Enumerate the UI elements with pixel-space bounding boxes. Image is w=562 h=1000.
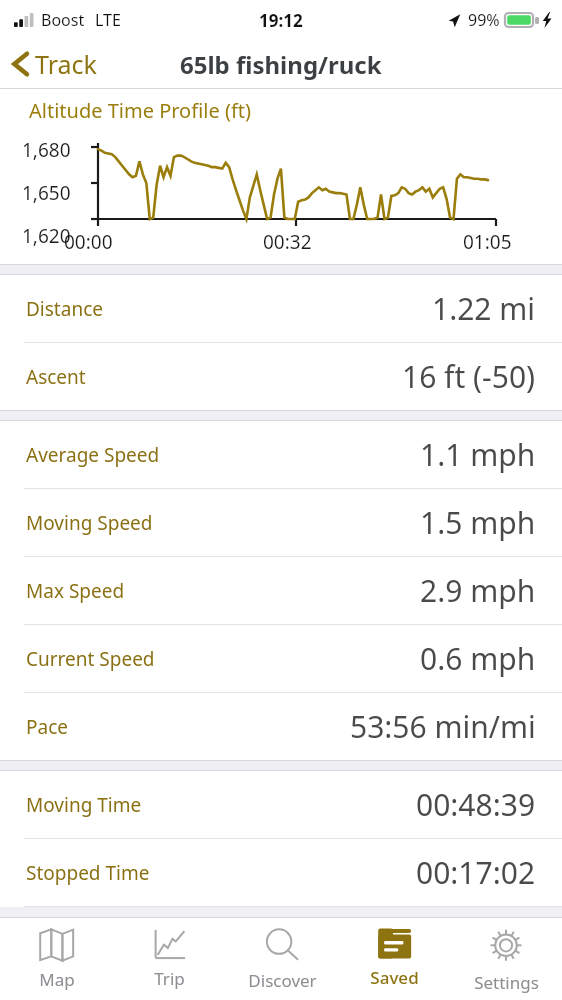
button[interactable]: Map [0, 918, 113, 1000]
staticText: Saved [370, 966, 419, 989]
staticText: Distance [26, 296, 103, 322]
button[interactable]: Stopped Time [0, 839, 562, 906]
staticText: Current Speed [26, 646, 155, 672]
staticText: 1.5 mph [420, 502, 536, 543]
staticText: Map [39, 968, 75, 991]
staticText: Max Speed [26, 578, 125, 604]
staticText: Pace [26, 714, 68, 740]
staticText: 00:48:39 [416, 784, 536, 825]
button[interactable]: Max Speed [0, 557, 562, 624]
staticText: Altitude Time Profile (ft) [29, 97, 251, 124]
other: Map [38, 928, 75, 961]
other: Discover [264, 928, 300, 962]
button[interactable]: Trip [113, 918, 226, 1000]
button[interactable]: Moving Time [0, 771, 562, 838]
button[interactable]: Saved [338, 918, 450, 1000]
staticText: 16 ft (-50) [402, 356, 536, 397]
staticText: 65lb fishing/ruck [180, 48, 382, 81]
staticText: 1,620 [22, 223, 90, 249]
staticText: 01:05 [463, 229, 512, 255]
button[interactable]: Discover [226, 918, 338, 1000]
other: Settings [488, 928, 524, 964]
staticText: 2.9 mph [420, 570, 536, 611]
other: Trip [152, 928, 188, 960]
staticText: 00:17:02 [416, 852, 536, 893]
button[interactable]: Pace [0, 693, 562, 760]
staticText: Moving Time [26, 792, 142, 818]
staticText: 1.1 mph [420, 434, 536, 475]
button[interactable]: Current Speed [0, 625, 562, 692]
button[interactable]: Settings [450, 918, 562, 1000]
button[interactable]: Track [0, 43, 109, 85]
staticText: 1,650 [22, 180, 90, 206]
staticText: 0.6 mph [420, 638, 536, 679]
staticText: Stopped Time [26, 860, 150, 886]
button[interactable]: Moving Speed [0, 489, 562, 556]
staticText: 1,680 [22, 137, 90, 163]
staticText: Average Speed [26, 442, 160, 468]
staticText: 1.22 mi [432, 288, 536, 329]
staticText: 53:56 min/mi [350, 706, 536, 747]
staticText: Discover [248, 969, 317, 992]
button[interactable]: Average Speed [0, 421, 562, 488]
staticText: Moving Speed [26, 510, 153, 536]
staticText: LTE [95, 9, 121, 31]
button[interactable]: Distance [0, 275, 562, 342]
staticText: 00:00 [64, 229, 113, 255]
staticText: Trip [154, 967, 185, 990]
staticText: 99% [468, 9, 500, 31]
staticText: 00:32 [263, 229, 312, 255]
staticText: Ascent [26, 364, 86, 390]
button[interactable]: Ascent [0, 343, 562, 410]
staticText: Boost [41, 9, 85, 31]
staticText: 19:12 [259, 9, 303, 32]
staticText: Settings [474, 971, 539, 994]
staticText: Track [35, 47, 97, 81]
other: Saved [376, 928, 413, 959]
